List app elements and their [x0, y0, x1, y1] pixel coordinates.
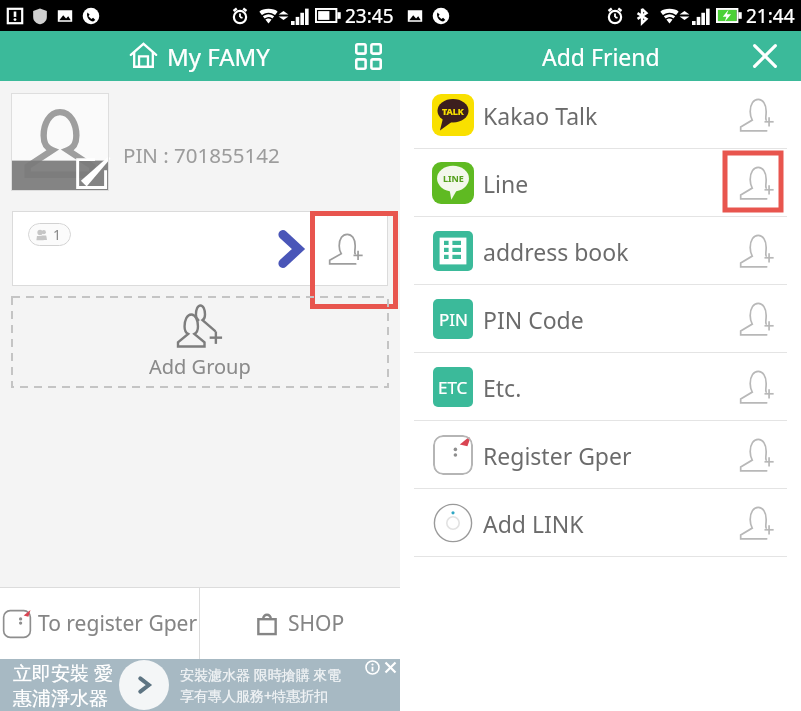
button[interactable]: Add LINK	[400, 489, 801, 557]
staticText: TALK	[442, 105, 464, 117]
button[interactable]: SHOP	[200, 588, 400, 659]
staticText: My FAMY	[167, 40, 270, 73]
staticText: 安裝濾水器 限時搶購 來電	[180, 665, 342, 684]
staticText: PIN	[439, 308, 468, 331]
staticText: 享有專人服務+特惠折扣	[180, 686, 329, 705]
staticText: Kakao Talk	[483, 100, 598, 131]
button[interactable]: Close	[745, 36, 785, 76]
staticText: 23:45	[345, 3, 394, 29]
button[interactable]: Add Group	[12, 297, 388, 387]
staticText: Add Group	[149, 353, 251, 380]
staticText: PIN Code	[483, 304, 584, 335]
staticText: To register Gper	[38, 609, 198, 638]
button[interactable]: 1	[12, 211, 388, 286]
button[interactable]: 立即安裝 愛	[0, 659, 400, 711]
button[interactable]: Grid view	[350, 38, 386, 74]
button[interactable]: Add via Kakao Talk	[729, 87, 785, 143]
staticText: address book	[483, 236, 629, 267]
button[interactable]: Register Gper	[400, 421, 801, 489]
button[interactable]: LINE	[400, 149, 801, 217]
button[interactable]: Add friend	[303, 211, 388, 286]
staticText: SHOP	[288, 609, 345, 638]
staticText: Line	[483, 168, 529, 199]
staticText: 21:44	[746, 3, 795, 29]
staticText: Etc.	[483, 372, 522, 403]
button[interactable]: Add via address book	[729, 223, 785, 279]
button[interactable]: Add via PIN Code	[729, 291, 785, 347]
button[interactable]: ETC	[400, 353, 801, 421]
button[interactable]: Add via Register Gper	[729, 427, 785, 483]
staticText: 立即安裝 愛	[13, 660, 113, 686]
staticText: Add Friend	[542, 41, 660, 72]
staticText: LINE	[443, 172, 464, 184]
staticText: Add LINK	[483, 508, 584, 539]
button[interactable]	[11, 93, 109, 191]
button[interactable]: Add via Add LINK	[729, 495, 785, 551]
staticText: Register Gper	[483, 440, 632, 471]
button[interactable]: PIN	[400, 285, 801, 353]
button[interactable]: Add via Etc.	[729, 359, 785, 415]
button[interactable]: address book	[400, 217, 801, 285]
button[interactable]: TALK	[400, 81, 801, 149]
button[interactable]: Add via Line	[729, 155, 785, 211]
staticText: PIN : 701855142	[123, 141, 280, 169]
button[interactable]: To register Gper	[0, 588, 199, 659]
staticText: 惠浦淨水器	[13, 687, 108, 711]
button[interactable]: My FAMY	[0, 31, 400, 81]
staticText: ETC	[438, 376, 468, 399]
staticText: 1	[53, 225, 62, 244]
